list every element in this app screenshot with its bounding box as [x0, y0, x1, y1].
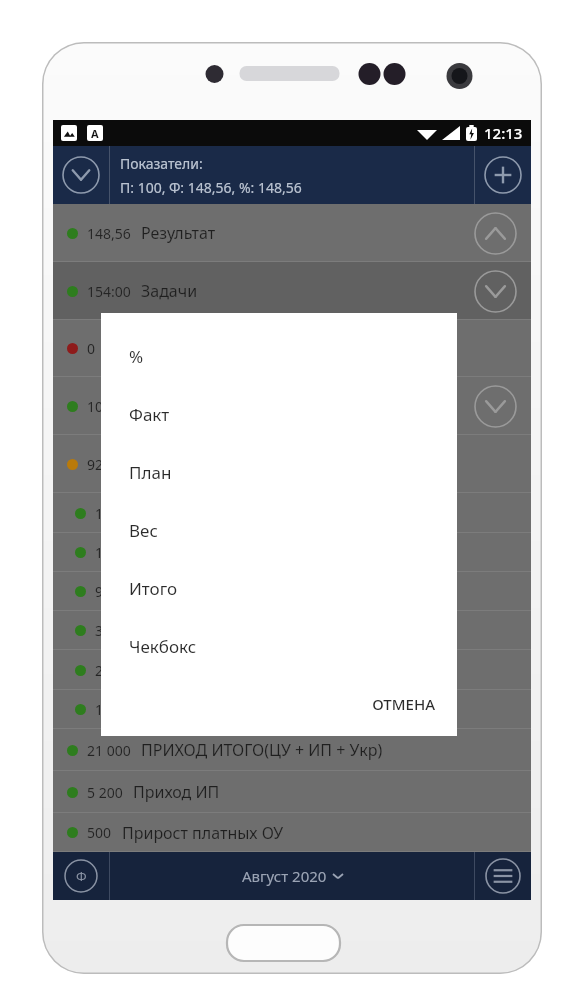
staticText: Качество [114, 453, 185, 475]
button[interactable]: 92 [53, 435, 531, 493]
button[interactable]: 2 400 [53, 650, 531, 690]
button[interactable]: 148,56 [53, 204, 531, 262]
staticText: План [129, 461, 172, 484]
staticText: 148,56 [87, 224, 131, 243]
staticText: A [91, 126, 99, 141]
staticText: 21 000 [87, 741, 131, 760]
staticText: 0 [87, 339, 96, 358]
button[interactable]: ОТМЕНА [350, 684, 457, 724]
button[interactable]: Filter [53, 852, 109, 900]
button[interactable]: 100 [53, 377, 531, 435]
staticText: 3 100 [95, 621, 131, 640]
button[interactable]: Collapse [53, 146, 109, 204]
button[interactable]: 1 800 [53, 690, 531, 729]
button[interactable]: Факт [101, 385, 457, 443]
staticText: Приход ИП [133, 781, 220, 803]
button[interactable]: 21 000 [53, 729, 531, 771]
button[interactable]: 12 000 [53, 533, 531, 572]
button[interactable]: 9 300 [53, 572, 531, 611]
staticText: Август 2020 [242, 866, 327, 886]
staticText: Услуги [141, 581, 193, 603]
button[interactable]: Август 2020 [110, 852, 474, 900]
button[interactable]: % [101, 327, 457, 385]
staticText: Показатели: [120, 154, 203, 173]
button[interactable]: Expand [474, 385, 517, 428]
button[interactable]: 5 200 [53, 771, 531, 813]
button[interactable]: Вес [101, 501, 457, 559]
staticText: 1 800 [95, 700, 131, 719]
button[interactable]: Menu [475, 852, 531, 900]
staticText: 12:13 [484, 123, 523, 143]
button[interactable]: 0 [53, 320, 531, 377]
button[interactable]: Итого [101, 559, 457, 617]
staticText: % [129, 345, 144, 368]
staticText: 92 [87, 455, 104, 474]
staticText: ПРИХОД ИТОГО(ЦУ + ИП + Укр) [141, 739, 383, 761]
staticText: 100 [87, 397, 112, 416]
staticText: Обучение [106, 338, 183, 360]
button[interactable]: 18 500 [53, 493, 531, 533]
staticText: Чекбокс [129, 635, 197, 658]
staticText: 154:00 [87, 282, 131, 301]
staticText: 18 500 [95, 504, 139, 523]
button[interactable]: Чекбокс [101, 617, 457, 675]
button[interactable]: План [101, 443, 457, 501]
staticText: Вес [129, 519, 158, 542]
staticText: ОТМЕНА [372, 694, 435, 714]
staticText: Факт [129, 403, 170, 426]
button[interactable]: 154:00 [53, 262, 531, 320]
button[interactable]: Expand [474, 212, 517, 255]
button[interactable]: 500 [53, 813, 531, 852]
staticText: П: 100, Ф: 148,56, %: 148,56 [120, 178, 302, 197]
button[interactable]: Expand [474, 270, 517, 313]
staticText: 12 000 [95, 543, 139, 562]
staticText: Ф [76, 867, 87, 885]
staticText: 5 200 [87, 783, 123, 802]
button[interactable]: Add [475, 146, 531, 204]
staticText: Прочее [141, 620, 199, 642]
staticText: Продажи [122, 395, 194, 417]
staticText: Задачи [141, 280, 198, 302]
staticText: 500 [87, 823, 112, 842]
staticText: Итого [129, 577, 178, 600]
button[interactable]: 3 100 [53, 611, 531, 650]
staticText: Результат [141, 222, 216, 244]
staticText: 2 400 [95, 661, 131, 680]
staticText: 9 300 [95, 582, 131, 601]
staticText: Прирост платных ОУ [122, 822, 284, 844]
